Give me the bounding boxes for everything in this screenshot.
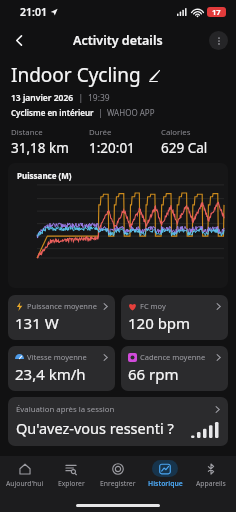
staticText: 21:01: [20, 5, 47, 19]
staticText: Enregistrer: [100, 479, 136, 488]
button[interactable]: Évaluation après la session: [8, 397, 228, 446]
staticText: 23,4 km/h: [15, 364, 86, 384]
button[interactable]: Puissance (M): [8, 163, 228, 288]
staticText: Cyclisme en intérieur: [11, 107, 94, 118]
staticText: 131 W: [15, 313, 59, 333]
staticText: Puissance moyenne: [27, 301, 102, 311]
staticText: 629 Cal: [161, 139, 208, 157]
staticText: 17: [212, 7, 221, 17]
staticText: 1:20:01: [89, 139, 135, 157]
staticText: 31,18 km: [11, 139, 69, 157]
staticText: Vitesse moyenne: [27, 352, 102, 362]
staticText: Appareils: [196, 479, 226, 488]
staticText: Activity details: [73, 32, 163, 49]
staticText: Distance: [11, 127, 43, 138]
staticText: |: [74, 92, 88, 104]
staticText: Calories: [161, 127, 191, 138]
button[interactable]: More options: [209, 31, 228, 50]
staticText: Qu'avez-vous ressenti ?: [16, 418, 191, 438]
staticText: Indoor Cycling: [11, 62, 141, 88]
button[interactable]: Explorer: [49, 460, 93, 488]
staticText: Puissance (M): [17, 170, 72, 181]
staticText: 19:39: [88, 92, 110, 104]
button[interactable]: Back: [6, 27, 32, 53]
staticText: |: [94, 107, 107, 118]
staticText: 13 janvier 2026: [11, 92, 74, 104]
staticText: 66 rpm: [128, 364, 179, 384]
staticText: Évaluation après la session: [16, 404, 214, 415]
staticText: Explorer: [58, 479, 85, 488]
button[interactable]: Puissance moyenne: [8, 295, 115, 340]
staticText: Durée: [89, 127, 112, 138]
button[interactable]: Aujourd'hui: [3, 460, 47, 488]
staticText: Cadence moyenne: [140, 352, 215, 362]
staticText: Aujourd'hui: [6, 479, 44, 488]
button[interactable]: Enregistrer: [96, 460, 140, 488]
button[interactable]: FC moy: [121, 295, 228, 340]
button[interactable]: Appareils: [189, 460, 233, 488]
staticText: 120 bpm: [128, 313, 191, 333]
staticText: WAHOO APP: [107, 107, 155, 118]
button[interactable]: Edit title: [146, 67, 163, 84]
staticText: Historique: [148, 479, 183, 488]
staticText: FC moy: [140, 301, 215, 311]
button[interactable]: Cadence moyenne: [121, 346, 228, 391]
button[interactable]: Historique: [143, 460, 187, 488]
button[interactable]: Vitesse moyenne: [8, 346, 115, 391]
